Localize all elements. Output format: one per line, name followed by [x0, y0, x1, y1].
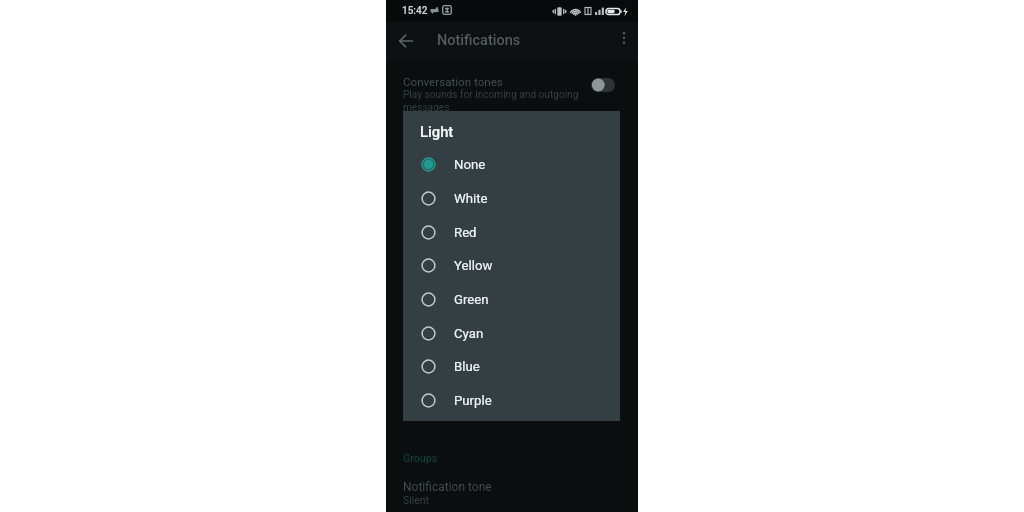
staticText: Conversation tones [403, 75, 503, 89]
button[interactable]: Cyan [403, 316, 620, 350]
staticText: Play sounds for incoming and outgoing me… [403, 89, 585, 114]
staticText: 15:42 [402, 5, 428, 17]
staticText: Light [420, 123, 454, 140]
staticText: Blue [454, 359, 480, 374]
button[interactable]: Blue [403, 349, 620, 383]
staticText: Green [454, 292, 489, 307]
button[interactable]: Back [390, 25, 422, 57]
button[interactable]: None [403, 147, 620, 181]
button[interactable]: More options [610, 24, 638, 52]
staticText: Red [454, 225, 477, 240]
staticText: White [454, 191, 488, 206]
button[interactable]: Purple [403, 383, 620, 417]
staticText: Notifications [437, 32, 521, 49]
button[interactable]: Notification tone [386, 474, 638, 512]
button[interactable]: Green [403, 282, 620, 316]
button[interactable]: Conversation tones toggle, off [585, 72, 621, 98]
staticText: Silent [403, 494, 429, 506]
button[interactable]: Red [403, 215, 620, 249]
staticText: Yellow [454, 258, 493, 273]
staticText: Cyan [454, 326, 484, 341]
button[interactable]: White [403, 181, 620, 215]
staticText: Notification tone [403, 480, 492, 494]
button[interactable]: Conversation tones [386, 68, 638, 112]
staticText: Purple [454, 393, 492, 408]
button[interactable]: Yellow [403, 248, 620, 282]
staticText: None [454, 157, 486, 172]
staticText: Groups [403, 452, 438, 464]
